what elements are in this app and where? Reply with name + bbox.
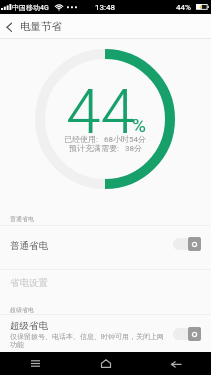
staticText: 已经使用: 68小时54分: [64, 134, 146, 144]
button[interactable]: Back: [0, 14, 20, 38]
button[interactable]: 省电设置: [0, 269, 211, 304]
button[interactable]: Toggle: [173, 327, 201, 341]
button[interactable]: Toggle: [173, 237, 201, 251]
staticText: 44%: [176, 3, 191, 12]
staticText: 仅保留拨号、电话本、信息、时钟可用，关闭上网功能: [10, 332, 170, 349]
staticText: 44: [66, 75, 135, 148]
staticText: 普通省电: [10, 240, 48, 252]
button[interactable]: Home: [71, 352, 141, 375]
button[interactable]: 普通省电: [0, 225, 211, 269]
staticText: 电量节省: [20, 20, 62, 33]
staticText: 超级省电: [10, 320, 48, 332]
staticText: 预计充满需要: 38分: [69, 143, 142, 153]
staticText: 超级省电: [10, 306, 34, 314]
staticText: 13:48: [95, 3, 115, 12]
staticText: 中国移动4G: [12, 3, 49, 12]
staticText: 普通省电: [10, 215, 34, 223]
button[interactable]: Back: [141, 352, 211, 375]
button[interactable]: Menu: [0, 352, 71, 375]
staticText: %: [132, 114, 146, 136]
staticText: 省电设置: [10, 277, 48, 289]
button[interactable]: 超级省电: [0, 314, 211, 352]
